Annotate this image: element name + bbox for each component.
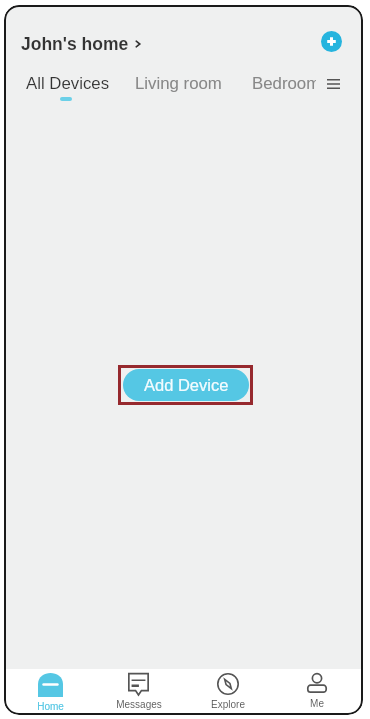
staticText: Add Device <box>144 376 229 394</box>
button[interactable]: Menu <box>316 73 350 95</box>
staticText: Bedroom <box>252 74 316 93</box>
button[interactable]: Add <box>321 31 342 52</box>
button[interactable]: Explore <box>183 669 272 713</box>
button[interactable]: Add Device <box>123 369 249 401</box>
button[interactable]: Bedroom <box>252 74 316 97</box>
staticText: All Devices <box>26 74 110 93</box>
button[interactable]: All Devices <box>26 74 110 97</box>
staticText: Home <box>37 701 64 712</box>
button[interactable]: Messages <box>94 669 183 713</box>
staticText: Living room <box>135 74 222 93</box>
button[interactable]: Me <box>272 669 361 713</box>
staticText: Messages <box>116 699 162 710</box>
button[interactable]: Living room <box>135 74 222 97</box>
staticText: John's home <box>21 34 129 54</box>
button[interactable]: Home <box>6 669 94 713</box>
staticText: Me <box>310 698 324 709</box>
staticText: Explore <box>211 699 245 710</box>
button[interactable]: John's home <box>21 34 143 54</box>
